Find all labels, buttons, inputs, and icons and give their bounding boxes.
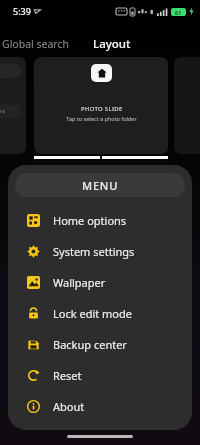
staticText: Wallpaper	[53, 275, 106, 290]
button[interactable]: Home	[91, 64, 112, 82]
staticText: MENU	[82, 178, 119, 193]
button[interactable]: Lock edit mode	[8, 298, 192, 329]
staticText: Backup center	[53, 337, 127, 352]
staticText: PHOTO SLIDE	[81, 105, 123, 113]
button[interactable]: System s	[0, 57, 26, 154]
staticText: Tap to select a photo folder	[66, 115, 137, 122]
staticText: About	[53, 399, 85, 414]
staticText: Reset	[53, 368, 82, 383]
staticText: 5:39	[13, 5, 31, 17]
staticText: Lock edit mode	[53, 306, 132, 321]
staticText: 61	[175, 9, 182, 16]
staticText: System settings	[53, 244, 135, 259]
button[interactable]: Global search	[0, 34, 75, 54]
staticText: System s	[0, 108, 5, 115]
button[interactable]: Wallpaper	[8, 267, 192, 298]
button[interactable]: System settings	[8, 236, 192, 267]
button[interactable]: MENU	[15, 173, 185, 197]
button[interactable]: Backup center	[8, 329, 192, 360]
button[interactable]: Home options	[8, 205, 192, 236]
staticText: Home options	[53, 213, 127, 228]
button[interactable]: Reset	[8, 360, 192, 391]
button[interactable]: About	[8, 391, 192, 422]
staticText: Global search	[2, 37, 69, 51]
staticText: Layout	[93, 36, 131, 52]
button[interactable]: Layout	[87, 33, 137, 55]
button[interactable]: Home	[34, 57, 168, 154]
